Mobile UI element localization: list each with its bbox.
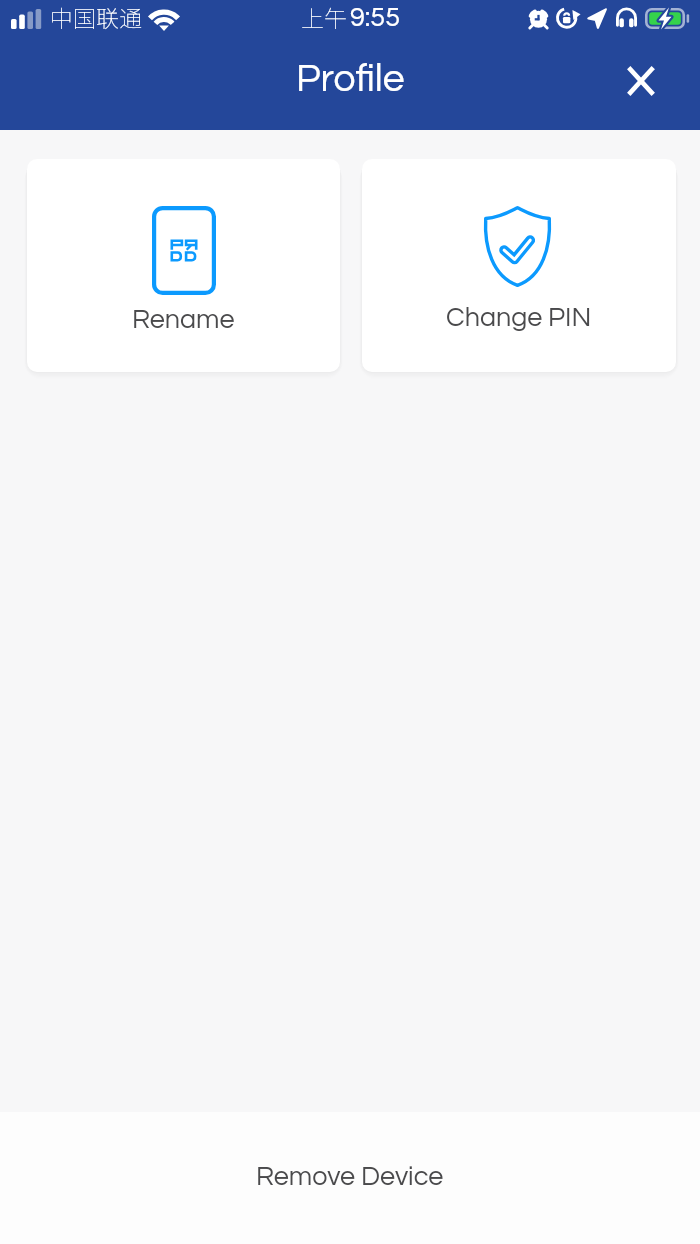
staticText: Change PIN: [446, 304, 592, 332]
button[interactable]: Remove Device: [0, 1112, 700, 1244]
staticText: 9:55: [350, 4, 401, 32]
staticText: Remove Device: [256, 1163, 444, 1191]
button[interactable]: Rename: [27, 159, 340, 372]
staticText: 中国联通: [50, 0, 142, 33]
button[interactable]: Close: [608, 48, 673, 113]
staticText: Profile: [296, 59, 405, 99]
staticText: Rename: [132, 306, 235, 334]
button[interactable]: Change PIN: [362, 159, 676, 372]
staticText: 上午: [301, 0, 347, 33]
